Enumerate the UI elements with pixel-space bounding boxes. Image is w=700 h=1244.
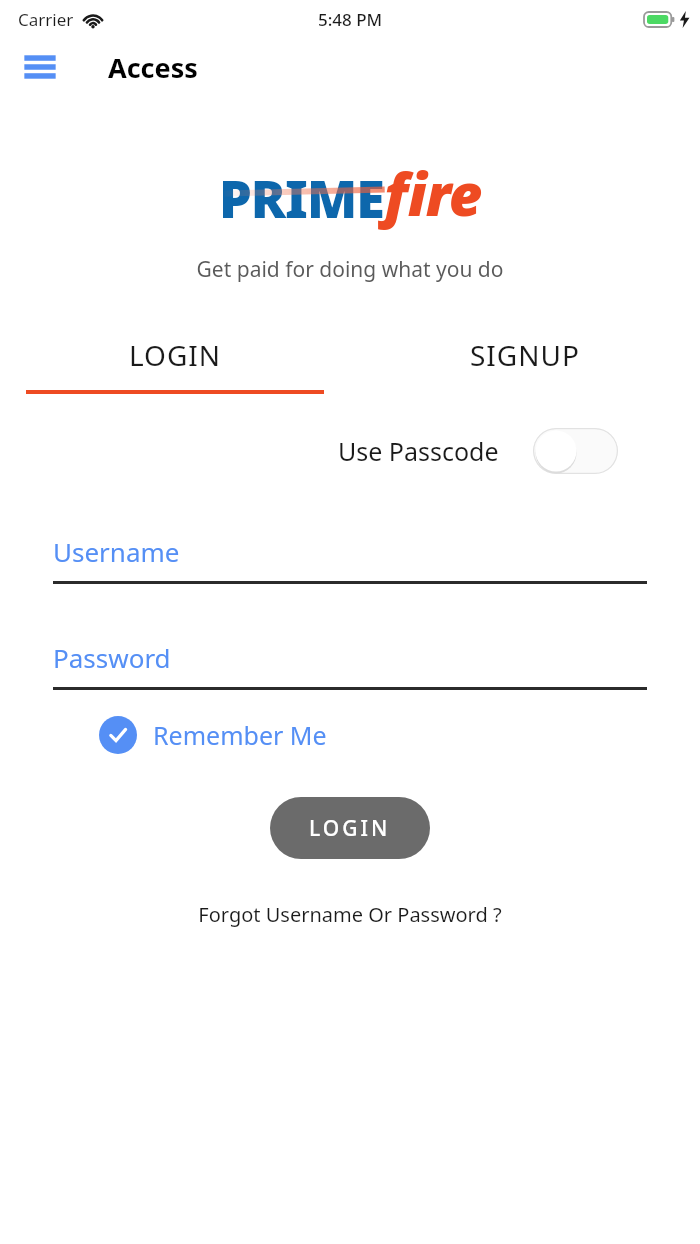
staticText: LOGIN xyxy=(309,814,391,843)
staticText: LOGIN xyxy=(129,336,222,374)
staticText: Get paid for doing what you do xyxy=(0,255,700,284)
staticText: Carrier xyxy=(18,8,74,31)
staticText: Username xyxy=(53,534,180,569)
staticText: SIGNUP xyxy=(470,336,580,374)
staticText: Access xyxy=(108,49,198,86)
staticText: Password xyxy=(53,640,171,675)
staticText: PRIME xyxy=(219,162,384,233)
button[interactable]: Remember Me xyxy=(99,716,327,754)
button[interactable]: Password xyxy=(53,640,647,690)
button[interactable]: Use Passcode xyxy=(0,428,618,474)
staticText: 5:48 PM xyxy=(318,8,383,31)
button[interactable]: LOGIN xyxy=(0,336,350,394)
button[interactable]: LOGIN xyxy=(270,797,430,859)
button[interactable]: Open navigation menu xyxy=(12,39,68,95)
staticText: Remember Me xyxy=(153,718,327,752)
button[interactable]: Forgot Username Or Password ? xyxy=(0,901,700,928)
button[interactable]: SIGNUP xyxy=(350,336,700,394)
staticText: fire xyxy=(384,154,482,233)
button[interactable]: Username xyxy=(53,534,647,584)
staticText: Use Passcode xyxy=(338,434,499,468)
